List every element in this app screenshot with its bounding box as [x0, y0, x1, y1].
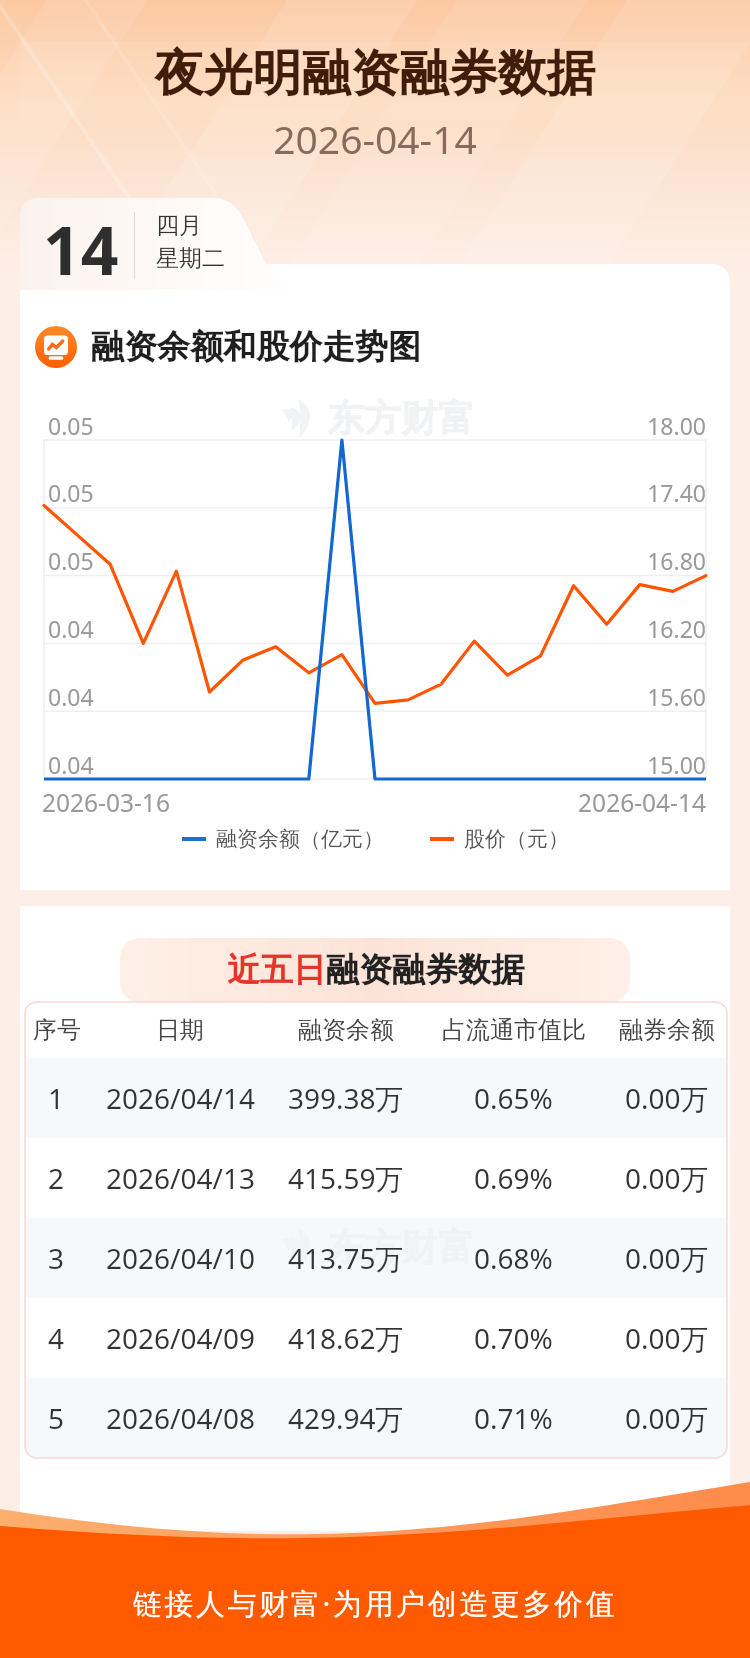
- staticText: 夜光明融资融券数据: [0, 43, 750, 105]
- staticText: 1: [48, 1079, 65, 1117]
- staticText: 融券余额: [619, 1015, 715, 1045]
- staticText: 股价（元）: [464, 826, 569, 852]
- staticText: 0.05: [48, 477, 94, 508]
- staticText: 2026/04/08: [106, 1399, 255, 1437]
- staticText: 0.05: [48, 545, 94, 576]
- staticText: 0.04: [48, 749, 94, 780]
- staticText: 18.00: [520, 410, 706, 441]
- staticText: 0.68%: [474, 1239, 553, 1277]
- staticText: 占流通市值比: [442, 1015, 586, 1045]
- staticText: 0.00万: [625, 1079, 709, 1117]
- staticText: 5: [48, 1399, 65, 1437]
- staticText: 融资余额: [298, 1015, 394, 1045]
- staticText: 2026/04/14: [106, 1079, 255, 1117]
- staticText: 2026/04/09: [106, 1319, 255, 1357]
- staticText: 0.71%: [474, 1399, 553, 1437]
- staticText: 0.04: [48, 613, 94, 644]
- staticText: 2026-04-14: [0, 112, 750, 165]
- staticText: 418.62万: [288, 1319, 404, 1357]
- staticText: 17.40: [520, 477, 706, 508]
- staticText: 0.05: [48, 410, 94, 441]
- staticText: 链接人与财富·为用户创造更多价值: [0, 1583, 750, 1623]
- staticText: 融资余额（亿元）: [216, 826, 384, 852]
- staticText: 2026/04/13: [106, 1159, 255, 1197]
- staticText: 0.00万: [625, 1239, 709, 1277]
- staticText: 东方财富: [327, 1224, 475, 1271]
- staticText: 2: [48, 1159, 65, 1197]
- staticText: 0.00万: [625, 1319, 709, 1357]
- staticText: 16.80: [520, 545, 706, 576]
- staticText: 融资余额和股价走势图: [91, 326, 421, 368]
- staticText: 2026-03-16: [42, 786, 170, 819]
- staticText: 4: [48, 1319, 65, 1357]
- staticText: 0.00万: [625, 1159, 709, 1197]
- staticText: 东方财富: [327, 395, 475, 442]
- staticText: 近五日融资融券数据: [227, 949, 524, 991]
- staticText: 星期二: [156, 244, 225, 273]
- staticText: 2026/04/10: [106, 1239, 255, 1277]
- staticText: 16.20: [520, 613, 706, 644]
- staticText: 四月: [156, 211, 202, 240]
- staticText: 399.38万: [288, 1079, 404, 1117]
- staticText: 2026-04-14: [518, 786, 706, 819]
- staticText: 413.75万: [288, 1239, 404, 1277]
- staticText: 日期: [156, 1015, 204, 1045]
- staticText: 15.60: [520, 681, 706, 712]
- staticText: 14: [43, 204, 119, 294]
- staticText: 415.59万: [288, 1159, 404, 1197]
- staticText: 0.04: [48, 681, 94, 712]
- staticText: 429.94万: [288, 1399, 404, 1437]
- staticText: 0.00万: [625, 1399, 709, 1437]
- staticText: 3: [48, 1239, 65, 1277]
- staticText: 序号: [33, 1015, 81, 1045]
- staticText: 0.65%: [474, 1079, 553, 1117]
- staticText: 0.70%: [474, 1319, 553, 1357]
- staticText: 0.69%: [474, 1159, 553, 1197]
- staticText: 15.00: [520, 749, 706, 780]
